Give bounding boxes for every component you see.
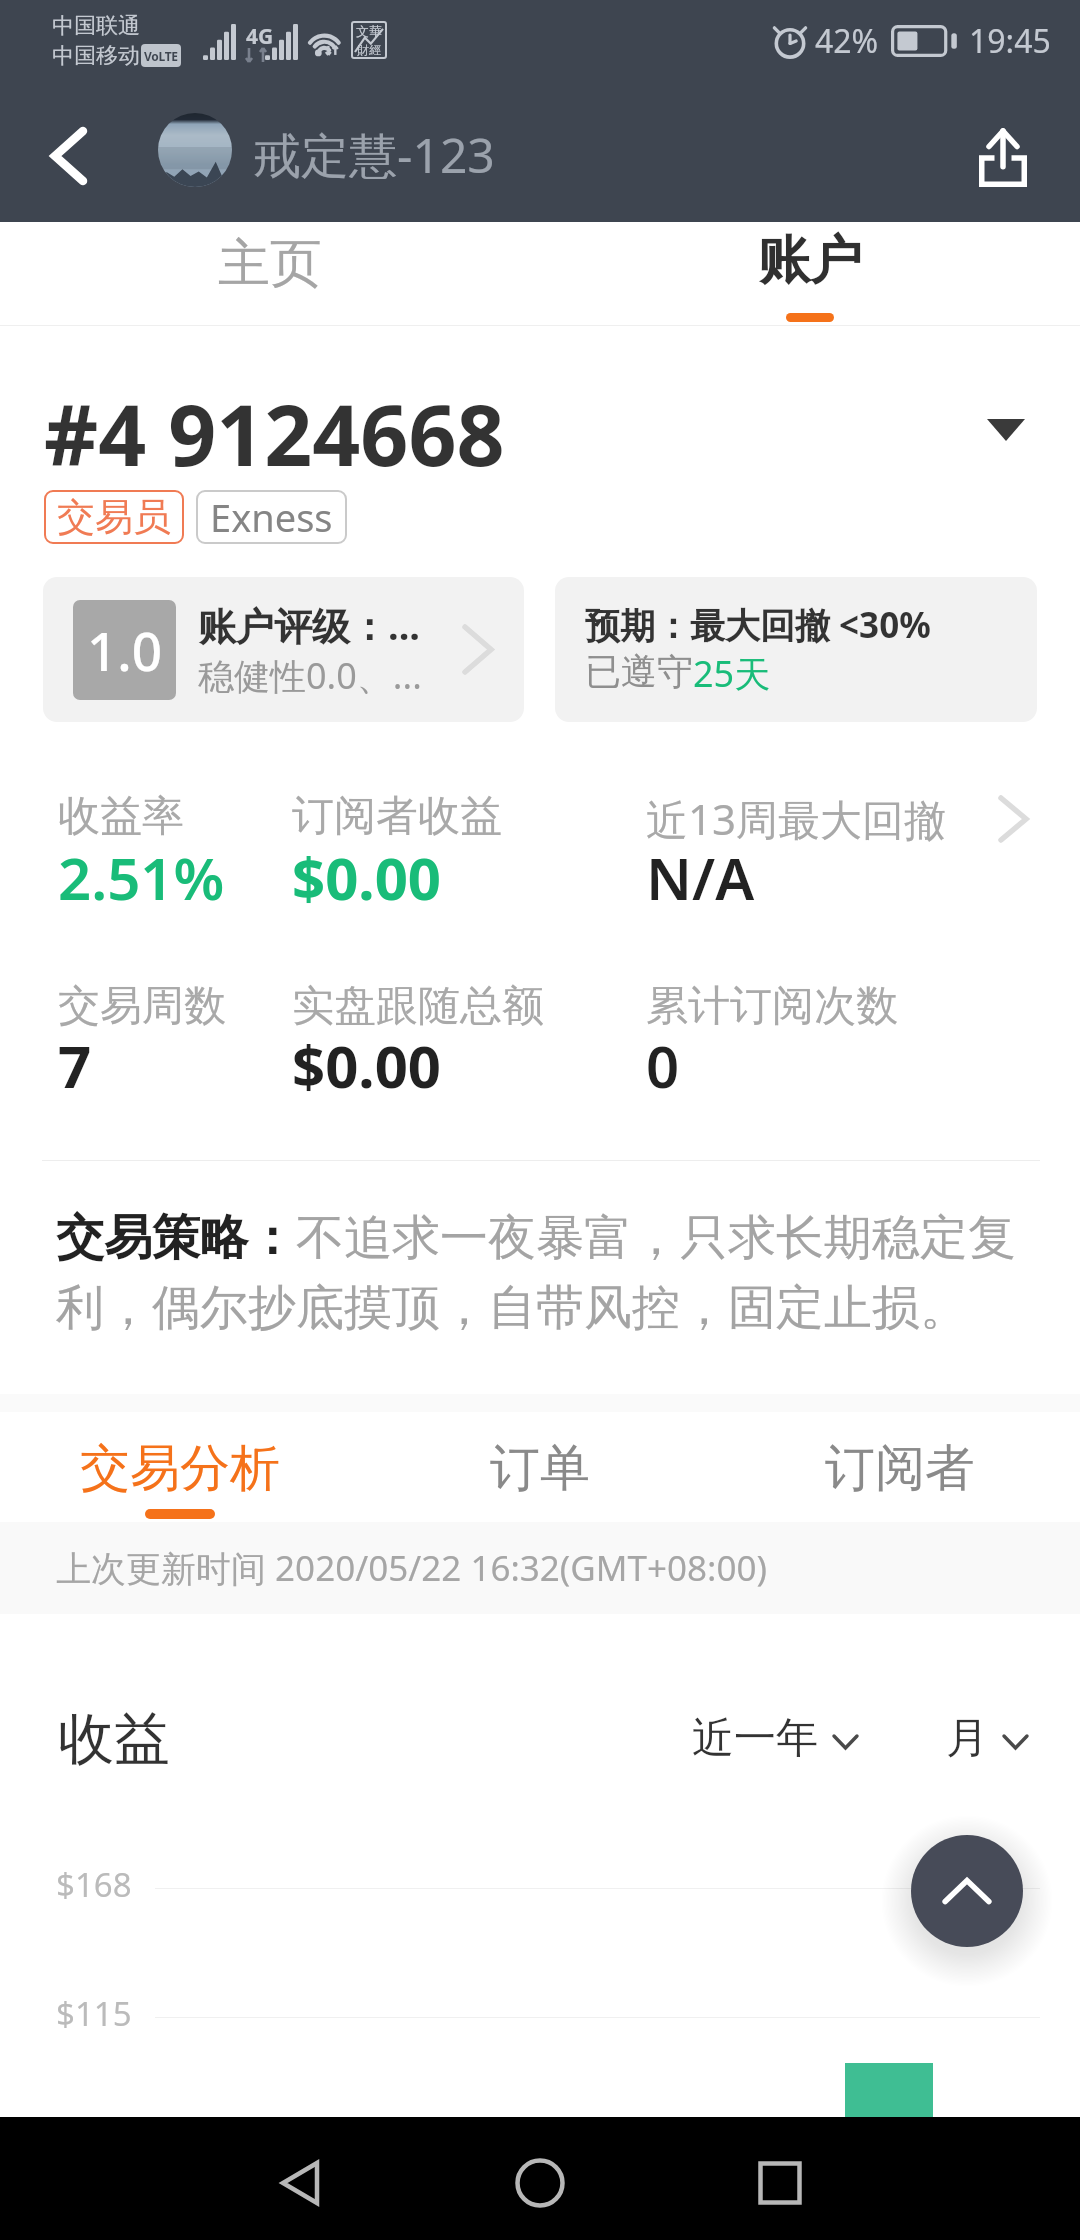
staticText: 预期：最大回撤 <30% — [585, 601, 931, 649]
staticText: 收益率 — [58, 790, 184, 843]
staticText: 2.51% — [58, 838, 225, 917]
button[interactable]: 账户 — [540, 222, 1080, 326]
staticText: 月 — [946, 1712, 988, 1765]
staticText: 稳健性0.0、... — [198, 651, 422, 700]
staticText: 19:45 — [969, 19, 1051, 63]
button[interactable]: Select account — [966, 390, 1046, 470]
button[interactable]: 月 — [946, 1712, 1029, 1765]
staticText: Exness — [210, 491, 333, 543]
staticText: 中国联通 — [52, 12, 140, 40]
staticText: VoLTE — [144, 48, 178, 64]
staticText: 0 — [646, 1026, 680, 1105]
staticText: 账户 — [758, 228, 862, 294]
button[interactable]: Home — [480, 2123, 600, 2240]
button[interactable]: 1.0 — [43, 577, 524, 722]
staticText: N/A — [646, 838, 755, 917]
button[interactable]: Back — [240, 2123, 360, 2240]
staticText: $115 — [56, 1991, 132, 2036]
button[interactable]: 主页 — [0, 222, 540, 326]
staticText: 订阅者收益 — [292, 790, 502, 843]
staticText: 戒定慧-123 — [253, 122, 495, 188]
staticText: 4G — [246, 22, 274, 51]
staticText: 交易周数 — [58, 980, 226, 1033]
staticText: 近13周最大回撤 — [646, 790, 947, 847]
staticText: 1.0 — [87, 614, 163, 686]
staticText: 账户评级：... — [198, 599, 421, 651]
button[interactable]: 交易分析 — [0, 1412, 360, 1522]
staticText: $168 — [56, 1862, 132, 1907]
button[interactable]: 订单 — [360, 1412, 720, 1522]
button[interactable]: Back — [0, 110, 130, 222]
staticText: 財經 — [357, 42, 381, 57]
staticText: 中国移动 — [52, 42, 140, 70]
staticText: 7 — [58, 1026, 92, 1105]
button[interactable]: Details — [975, 784, 1045, 854]
staticText: 近一年 — [692, 1712, 818, 1765]
staticText: 交易员 — [57, 493, 171, 541]
staticText: 订阅者 — [825, 1437, 975, 1500]
staticText: 实盘跟随总额 — [292, 980, 544, 1033]
staticText: 25天 — [693, 649, 771, 698]
button[interactable]: 预期：最大回撤 <30% — [555, 577, 1037, 722]
button[interactable]: 近一年 — [692, 1712, 859, 1765]
staticText: 累计订阅次数 — [646, 980, 898, 1033]
staticText: 收益 — [58, 1704, 170, 1775]
staticText: 上次更新时间 2020/05/22 16:32(GMT+08:00) — [56, 1544, 768, 1592]
button[interactable]: Scroll to top — [911, 1835, 1023, 1947]
staticText: $0.00 — [292, 1026, 442, 1105]
staticText: 已遵守 — [585, 649, 693, 694]
staticText: 42% — [815, 19, 879, 63]
staticText: 文華 — [356, 23, 382, 39]
staticText: 交易分析 — [80, 1437, 280, 1500]
staticText: #4 9124668 — [44, 376, 505, 490]
button[interactable]: 订阅者 — [720, 1412, 1080, 1522]
staticText: 订单 — [490, 1437, 590, 1500]
staticText: 主页 — [218, 231, 322, 297]
button[interactable]: Share — [948, 110, 1066, 222]
button[interactable]: Recents — [720, 2123, 840, 2240]
staticText: $0.00 — [292, 838, 442, 917]
staticText: 交易策略：不追求一夜暴富，只求长期稳定复利，偶尔抄底摸顶，自带风控，固定止损。 — [56, 1208, 1028, 1339]
